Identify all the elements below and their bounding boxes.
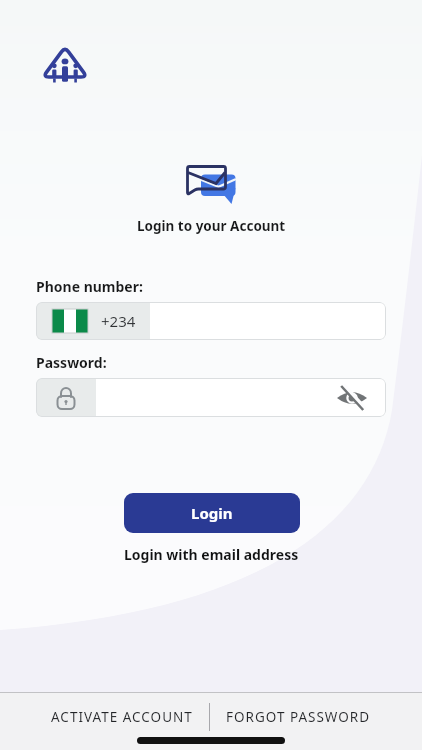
button[interactable]: Login bbox=[124, 493, 300, 533]
staticText: Login to your Account bbox=[137, 217, 286, 235]
staticText: FORGOT PASSWORD bbox=[226, 708, 371, 726]
button[interactable]: +234 bbox=[36, 302, 386, 340]
staticText: Login bbox=[191, 503, 233, 523]
button[interactable]: ACTIVATE ACCOUNT bbox=[43, 700, 201, 734]
button[interactable]: Login with email address bbox=[124, 545, 299, 564]
button[interactable] bbox=[36, 378, 386, 417]
button[interactable]: FORGOT PASSWORD bbox=[218, 700, 379, 734]
button[interactable] bbox=[336, 384, 368, 412]
staticText: +234 bbox=[101, 311, 136, 331]
staticText: Password: bbox=[36, 353, 107, 372]
staticText: ACTIVATE ACCOUNT bbox=[51, 708, 193, 726]
staticText: Phone number: bbox=[36, 277, 143, 296]
